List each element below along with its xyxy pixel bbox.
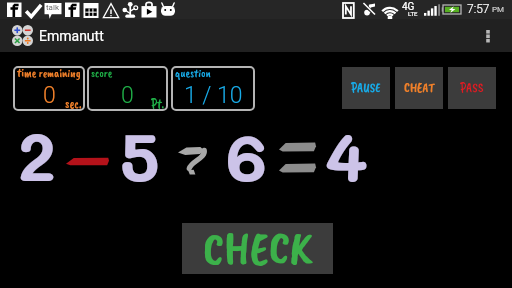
staticText: PASS — [460, 80, 484, 96]
staticText: PAUSE — [351, 80, 381, 96]
button[interactable]: PAUSE — [342, 67, 390, 109]
staticText: LTE — [408, 10, 418, 17]
staticText: 5 — [120, 111, 160, 199]
staticText: 6 — [226, 111, 268, 199]
staticText: 0 — [121, 82, 134, 109]
button[interactable]: More options — [471, 19, 504, 52]
staticText: 7:57 — [467, 2, 490, 16]
staticText: time remaining — [17, 65, 81, 80]
staticText: 4 — [325, 111, 369, 199]
button[interactable]: score — [87, 66, 168, 111]
button[interactable]: PASS — [448, 67, 496, 109]
button[interactable]: CHECK — [182, 223, 333, 274]
button[interactable]: time remaining — [13, 66, 85, 111]
staticText: score — [91, 65, 113, 80]
button[interactable]: question — [171, 66, 255, 111]
staticText: Pt. — [151, 96, 165, 112]
staticText: 1 / 10 — [184, 82, 243, 109]
staticText: CHEAT — [404, 80, 435, 96]
button[interactable]: CHEAT — [395, 67, 443, 109]
staticText: 0 — [43, 82, 56, 109]
staticText: CHECK — [203, 219, 313, 270]
staticText: Emmanutt — [39, 28, 104, 44]
staticText: PM — [492, 5, 505, 14]
staticText: talk — [46, 3, 59, 12]
staticText: 4G — [402, 1, 415, 13]
staticText: 2 — [18, 111, 57, 199]
staticText: sec. — [65, 96, 82, 112]
staticText: question — [175, 65, 211, 80]
